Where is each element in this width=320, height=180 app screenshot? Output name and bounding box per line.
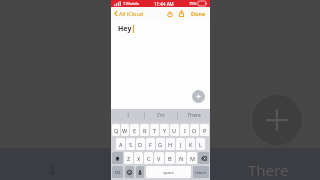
button[interactable]: Share xyxy=(177,9,186,18)
button[interactable]: J xyxy=(176,138,185,150)
staticText: I xyxy=(127,112,129,119)
button[interactable]: I xyxy=(111,109,144,122)
button[interactable]: O xyxy=(190,124,199,136)
button[interactable]: W xyxy=(121,124,129,136)
staticText: 123 xyxy=(114,170,121,175)
staticText: return xyxy=(195,170,207,175)
staticText: O xyxy=(192,127,197,134)
staticText: C xyxy=(147,155,151,162)
button[interactable]: Y xyxy=(160,124,169,136)
button[interactable]: A xyxy=(116,138,125,150)
staticText: D xyxy=(138,141,143,148)
staticText: E xyxy=(133,127,137,134)
staticText: I xyxy=(184,127,186,134)
button[interactable]: return xyxy=(193,166,209,178)
staticText: 11:44 AM xyxy=(154,1,174,7)
staticText: Done xyxy=(191,10,206,17)
staticText: S xyxy=(129,141,133,148)
button[interactable]: Add xyxy=(252,95,302,145)
staticText: G xyxy=(158,141,163,148)
button[interactable]: H xyxy=(166,138,175,150)
button[interactable]: There xyxy=(178,109,210,122)
staticText: T xyxy=(153,127,157,134)
button[interactable]: E xyxy=(130,124,139,136)
staticText: W xyxy=(122,127,128,134)
staticText: T-Mobile xyxy=(123,1,140,6)
staticText: I'm xyxy=(157,112,165,119)
button[interactable]: Shift xyxy=(112,152,123,164)
button[interactable]: I'm xyxy=(145,109,177,122)
staticText: Y xyxy=(163,127,167,134)
button[interactable]: R xyxy=(140,124,149,136)
button[interactable]: T xyxy=(150,124,159,136)
staticText: Z xyxy=(127,155,131,162)
button[interactable]: N xyxy=(176,152,186,164)
button[interactable]: U xyxy=(170,124,179,136)
button[interactable]: Z xyxy=(124,152,133,164)
staticText: H xyxy=(168,141,173,148)
staticText: All iCloud xyxy=(119,10,144,17)
staticText: X xyxy=(137,155,141,162)
button[interactable]: space xyxy=(146,166,191,178)
staticText: R xyxy=(143,127,147,134)
staticText: U xyxy=(172,127,177,134)
staticText: F xyxy=(149,141,152,148)
button[interactable]: Q xyxy=(112,124,120,136)
button[interactable]: I xyxy=(180,124,189,136)
staticText: space xyxy=(163,170,174,175)
button[interactable]: Add attachment xyxy=(192,90,205,103)
staticText: B xyxy=(168,155,172,162)
staticText: K xyxy=(189,141,193,148)
button[interactable]: P xyxy=(200,124,209,136)
button[interactable]: X xyxy=(134,152,143,164)
staticText: I xyxy=(50,158,56,178)
staticText: M xyxy=(190,155,195,162)
staticText: L xyxy=(199,141,202,148)
button[interactable]: 123 xyxy=(112,166,123,178)
button[interactable]: V xyxy=(154,152,164,164)
button[interactable]: Done xyxy=(189,8,208,19)
button[interactable]: C xyxy=(144,152,153,164)
button[interactable]: L xyxy=(196,138,205,150)
staticText: There xyxy=(248,160,289,180)
button[interactable]: D xyxy=(136,138,145,150)
button[interactable]: Lock note xyxy=(165,9,174,18)
button[interactable]: Backspace xyxy=(198,152,209,164)
staticText: A xyxy=(119,141,123,148)
button[interactable]: Dictation xyxy=(136,166,144,178)
button[interactable]: G xyxy=(156,138,165,150)
button[interactable]: M xyxy=(187,152,197,164)
staticText: N xyxy=(179,155,184,162)
staticText: J xyxy=(180,141,182,148)
button[interactable]: All iCloud xyxy=(113,8,145,19)
staticText: Hey xyxy=(118,24,132,34)
staticText: P xyxy=(203,127,207,134)
button[interactable]: K xyxy=(186,138,195,150)
button[interactable]: Emoji xyxy=(125,166,134,178)
button[interactable]: B xyxy=(165,152,175,164)
button[interactable]: S xyxy=(126,138,135,150)
staticText: V xyxy=(157,155,161,162)
staticText: Q xyxy=(114,127,119,134)
staticText: 75% xyxy=(189,1,197,6)
button[interactable]: F xyxy=(146,138,155,150)
staticText: There xyxy=(187,112,201,119)
